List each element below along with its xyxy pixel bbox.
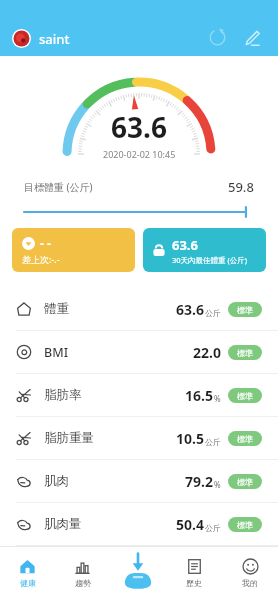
staticText: 16.5 — [185, 386, 213, 405]
staticText: 標準 — [237, 391, 253, 401]
staticText: 59.8 — [228, 178, 254, 196]
staticText: 體重 — [44, 301, 69, 317]
button[interactable]: 趨勢 — [55, 546, 110, 600]
staticText: 標準 — [237, 434, 253, 444]
staticText: 公斤 — [205, 437, 221, 447]
button[interactable]: Refresh — [202, 22, 232, 52]
staticText: 肌肉 — [44, 473, 69, 489]
button[interactable]: 肌肉 — [0, 460, 278, 502]
button[interactable]: 健康 — [0, 546, 55, 600]
staticText: 30天內最佳體重 (公斤) — [172, 255, 248, 265]
staticText: 10.5 — [176, 429, 204, 448]
button[interactable]: 脂肪重量 — [0, 417, 278, 459]
staticText: 健康 — [20, 578, 36, 588]
staticText: % — [214, 479, 221, 490]
button[interactable]: 體重 — [0, 288, 278, 330]
button[interactable]: 我的 — [222, 546, 278, 600]
staticText: - - — [40, 235, 51, 251]
staticText: 我的 — [242, 578, 258, 588]
staticText: % — [214, 393, 221, 404]
staticText: 標準 — [237, 305, 253, 315]
button[interactable]: - - — [12, 228, 135, 272]
staticText: 差上次:-.- — [22, 253, 60, 265]
button[interactable]: 目標體重 (公斤) — [24, 178, 254, 218]
staticText: 肌肉量 — [44, 516, 82, 532]
staticText: 22.0 — [193, 343, 221, 362]
staticText: 2020-02-02 10:45 — [103, 148, 176, 160]
staticText: 公斤 — [205, 308, 221, 318]
button[interactable]: BMI — [0, 331, 278, 373]
staticText: 50.4 — [176, 515, 204, 534]
staticText: 脂肪重量 — [44, 430, 94, 446]
staticText: BMI — [44, 344, 69, 361]
button[interactable]: Edit — [236, 22, 266, 52]
button[interactable]: 脂肪率 — [0, 374, 278, 416]
button[interactable]: 歷史 — [166, 546, 222, 600]
staticText: 63.6 — [172, 236, 198, 254]
button[interactable]: 63.6 — [143, 228, 266, 272]
staticText: 63.6 — [111, 108, 167, 146]
staticText: 63.6 — [176, 300, 204, 319]
staticText: 趨勢 — [75, 578, 91, 588]
button[interactable]: 肌肉量 — [0, 503, 278, 545]
button[interactable]: saint — [12, 29, 70, 48]
staticText: 標準 — [237, 477, 253, 487]
staticText: 脂肪率 — [44, 387, 82, 403]
staticText: 79.2 — [185, 472, 213, 491]
button[interactable]: Measure — [110, 546, 166, 600]
staticText: 標準 — [237, 348, 253, 358]
staticText: 目標體重 (公斤) — [24, 180, 93, 194]
staticText: 歷史 — [186, 578, 202, 588]
staticText: saint — [39, 30, 70, 48]
staticText: 公斤 — [205, 523, 221, 533]
staticText: 標準 — [237, 520, 253, 530]
